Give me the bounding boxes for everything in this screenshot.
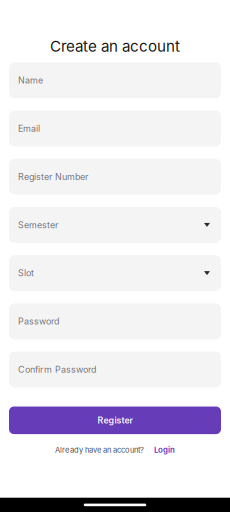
staticText: Already have an account? [55,445,144,454]
button[interactable]: Semester [9,207,221,243]
staticText: Password [18,316,59,327]
staticText: Semester [18,219,58,230]
button[interactable]: Login [154,445,175,455]
staticText: Register Number [18,171,88,182]
staticText: Login [154,445,175,455]
button[interactable]: Password [9,303,221,339]
staticText: Slot [18,268,34,278]
button[interactable]: Slot [9,255,221,291]
staticText: Name [18,75,43,86]
staticText: Email [18,123,40,134]
button[interactable]: Register Number [9,159,221,195]
staticText: Confirm Password [18,364,96,375]
button[interactable]: Name [9,62,221,98]
button[interactable]: Confirm Password [9,351,221,387]
staticText: Create an account [50,37,180,55]
staticText: Register [97,415,132,426]
button[interactable]: Register [9,406,221,434]
button[interactable]: Email [9,110,221,146]
